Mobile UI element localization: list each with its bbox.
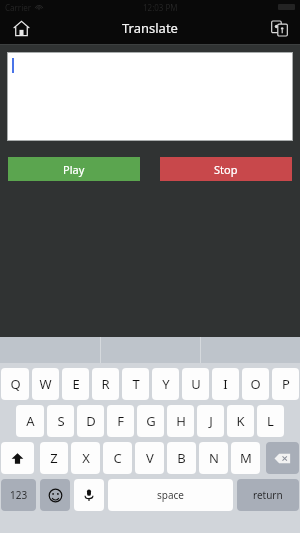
button[interactable]: K bbox=[227, 405, 254, 437]
staticText: S bbox=[57, 412, 65, 430]
button[interactable] bbox=[8, 53, 292, 140]
button[interactable]: Z bbox=[40, 442, 68, 474]
staticText: Z bbox=[50, 449, 58, 467]
staticText: X bbox=[82, 449, 90, 467]
staticText: Translate bbox=[122, 19, 178, 37]
staticText: U bbox=[191, 375, 201, 393]
button[interactable]: O bbox=[242, 368, 269, 400]
staticText: F bbox=[117, 412, 124, 430]
staticText: H bbox=[176, 412, 186, 430]
staticText: L bbox=[267, 412, 274, 430]
button[interactable]: Y bbox=[152, 368, 179, 400]
staticText: B bbox=[177, 449, 186, 467]
button[interactable]: H bbox=[167, 405, 194, 437]
button[interactable]: B bbox=[167, 442, 196, 474]
button[interactable]: Q bbox=[1, 368, 29, 400]
button[interactable]: return bbox=[237, 479, 299, 511]
button[interactable]: space bbox=[108, 479, 233, 511]
staticText: C bbox=[113, 449, 122, 467]
staticText: Y bbox=[162, 375, 170, 393]
button[interactable]: J bbox=[197, 405, 224, 437]
button[interactable]: E bbox=[62, 368, 89, 400]
button[interactable]: S bbox=[47, 405, 74, 437]
staticText: space bbox=[157, 488, 184, 502]
staticText: M bbox=[240, 449, 252, 467]
button[interactable]: 123 bbox=[1, 479, 36, 511]
button[interactable]: C bbox=[103, 442, 132, 474]
staticText: 123 bbox=[10, 488, 28, 502]
staticText: Stop bbox=[214, 162, 238, 177]
staticText: Q bbox=[10, 375, 21, 393]
button[interactable]: X bbox=[71, 442, 100, 474]
staticText: I bbox=[223, 375, 228, 393]
button[interactable]: W bbox=[32, 368, 59, 400]
button[interactable]: M bbox=[231, 442, 260, 474]
button[interactable]: G bbox=[137, 405, 164, 437]
button[interactable]: F bbox=[107, 405, 134, 437]
staticText: P bbox=[282, 375, 290, 393]
button[interactable]: Shift bbox=[1, 442, 34, 474]
staticText: V bbox=[146, 449, 154, 467]
staticText: G bbox=[146, 412, 156, 430]
button[interactable]: A bbox=[16, 405, 44, 437]
button[interactable]: Settings cards bbox=[265, 14, 293, 42]
button[interactable]: R bbox=[92, 368, 119, 400]
button[interactable]: Home bbox=[7, 14, 35, 42]
staticText: 12:03 PM bbox=[143, 2, 178, 13]
button[interactable]: Emoji bbox=[40, 479, 70, 511]
staticText: W bbox=[39, 375, 52, 393]
staticText: E bbox=[72, 375, 80, 393]
button[interactable]: T bbox=[122, 368, 149, 400]
button[interactable]: Play bbox=[8, 157, 140, 181]
staticText: Play bbox=[63, 162, 85, 177]
staticText: T bbox=[132, 375, 140, 393]
staticText: N bbox=[209, 449, 219, 467]
staticText: return bbox=[253, 488, 283, 502]
button[interactable]: P bbox=[272, 368, 299, 400]
button[interactable]: V bbox=[135, 442, 164, 474]
staticText: D bbox=[86, 412, 96, 430]
staticText: R bbox=[101, 375, 110, 393]
button[interactable]: D bbox=[77, 405, 104, 437]
staticText: J bbox=[209, 412, 213, 430]
button[interactable]: Backspace bbox=[266, 442, 299, 474]
staticText: O bbox=[250, 375, 261, 393]
button[interactable]: Stop bbox=[160, 157, 292, 181]
button[interactable]: L bbox=[257, 405, 284, 437]
button[interactable]: I bbox=[212, 368, 239, 400]
button[interactable]: Dictation bbox=[74, 479, 104, 511]
staticText: K bbox=[236, 412, 245, 430]
staticText: A bbox=[26, 412, 35, 430]
staticText: Carrier bbox=[5, 2, 32, 13]
button[interactable]: U bbox=[182, 368, 209, 400]
button[interactable]: N bbox=[199, 442, 228, 474]
